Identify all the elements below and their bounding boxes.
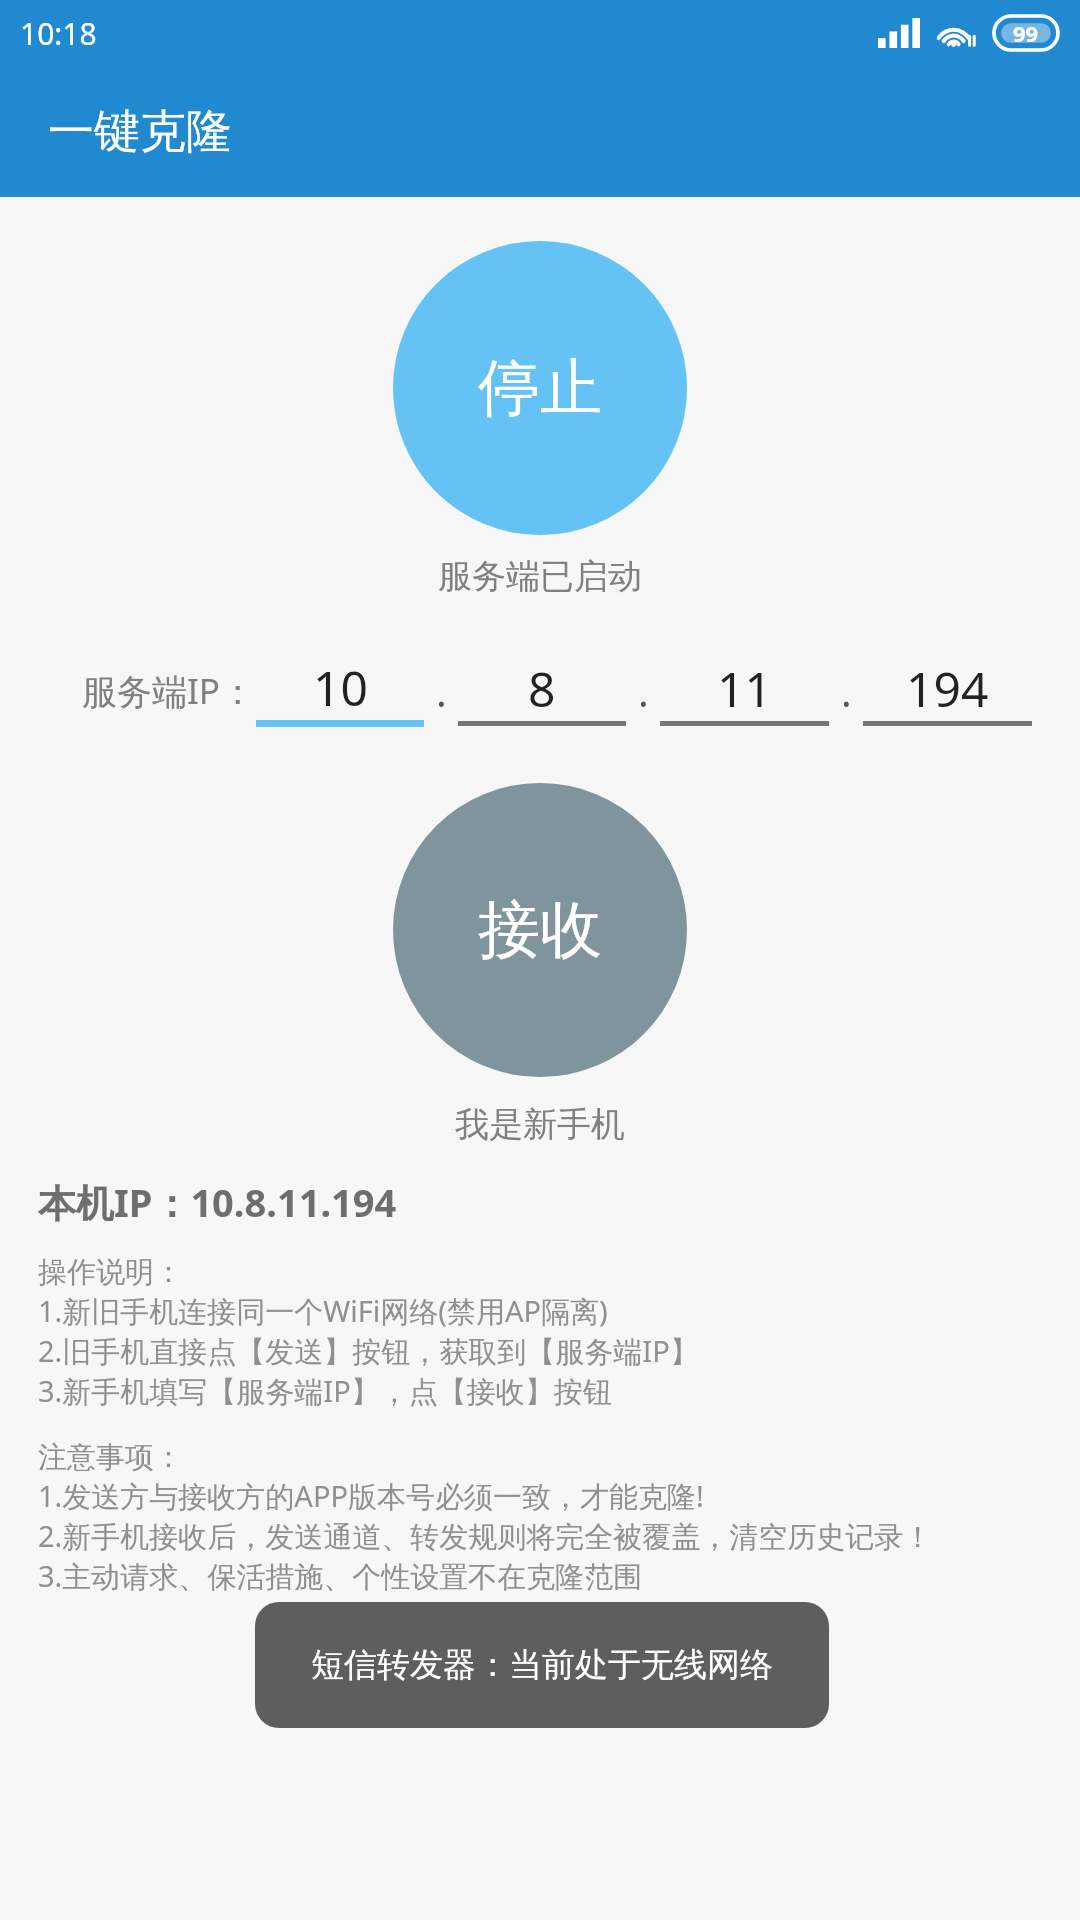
staticText: 短信转发器：当前处于无线网络 — [311, 1644, 773, 1686]
staticText: 99 — [1013, 18, 1039, 48]
staticText: 8 — [528, 656, 556, 721]
staticText: . — [841, 664, 852, 718]
staticText: 我是新手机 — [455, 1103, 625, 1146]
staticText: 10:18 — [20, 13, 97, 54]
staticText: 服务端已启动 — [438, 555, 642, 598]
staticText: 10 — [313, 655, 368, 720]
staticText: 接收 — [478, 891, 602, 969]
button[interactable]: 8 — [458, 655, 626, 726]
other: Battery 99 percent — [994, 16, 1058, 50]
button[interactable]: 短信转发器：当前处于无线网络 — [255, 1602, 829, 1728]
other: Cellular signal — [878, 18, 920, 48]
button[interactable]: 10 — [256, 654, 424, 727]
staticText: 1.新旧手机连接同一个WiFi网络(禁用AP隔离) — [38, 1291, 608, 1331]
button[interactable]: 停止 — [393, 241, 687, 535]
other: Wi-Fi — [936, 17, 978, 49]
button[interactable]: 194 — [863, 655, 1032, 726]
staticText: 3.新手机填写【服务端IP】，点【接收】按钮 — [38, 1371, 612, 1411]
staticText: . — [436, 664, 447, 718]
staticText: 本机IP：10.8.11.194 — [38, 1176, 397, 1228]
button[interactable]: 接收 — [393, 783, 687, 1077]
staticText: 3.主动请求、保活措施、个性设置不在克隆范围 — [38, 1556, 643, 1596]
button[interactable]: 11 — [660, 655, 829, 726]
staticText: 操作说明： — [38, 1254, 183, 1291]
staticText: 一键克隆 — [48, 103, 232, 161]
staticText: 11 — [717, 656, 772, 721]
staticText: 194 — [906, 656, 989, 721]
staticText: 停止 — [478, 349, 602, 427]
staticText: 1.发送方与接收方的APP版本号必须一致，才能克隆! — [38, 1476, 704, 1516]
staticText: 2.旧手机直接点【发送】按钮，获取到【服务端IP】 — [38, 1331, 699, 1371]
staticText: 注意事项： — [38, 1439, 183, 1476]
staticText: 服务端IP： — [82, 667, 256, 715]
staticText: 2.新手机接收后，发送通道、转发规则将完全被覆盖，清空历史记录！ — [38, 1516, 933, 1556]
staticText: . — [638, 664, 649, 718]
